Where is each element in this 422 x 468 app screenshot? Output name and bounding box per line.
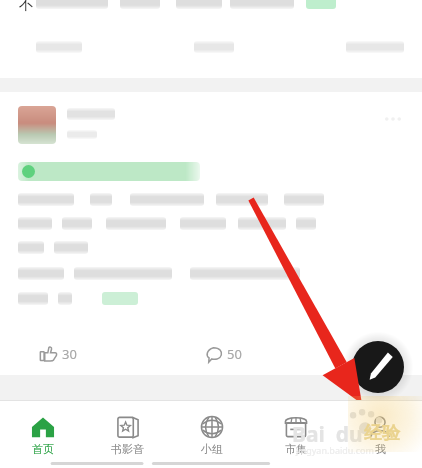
other: 市集 <box>284 415 308 439</box>
staticText: 首页 <box>32 442 54 456</box>
other: 赞 <box>40 346 57 363</box>
button[interactable] <box>0 0 422 78</box>
button[interactable]: 书影音 <box>85 409 170 460</box>
button[interactable]: 我 <box>338 409 422 460</box>
other: 首页 <box>31 415 55 439</box>
button[interactable]: 小组 <box>170 409 254 460</box>
button[interactable]: 转发 <box>364 341 398 367</box>
staticText: 50 <box>227 345 242 363</box>
staticText: 30 <box>62 345 77 363</box>
button[interactable]: 发布 <box>352 341 404 393</box>
button[interactable] <box>18 162 200 181</box>
other: 书影音 <box>116 415 140 439</box>
button[interactable]: 更多 <box>0 92 422 375</box>
other: 小组 <box>200 415 224 439</box>
staticText: 经验 <box>364 422 400 445</box>
button[interactable]: 首页 <box>0 409 85 460</box>
button[interactable]: 赞 <box>34 341 83 367</box>
staticText: 我 <box>375 442 386 456</box>
staticText: jingyan.baidu.com <box>296 444 374 456</box>
other: 评论 <box>205 346 222 363</box>
staticText: 市集 <box>285 442 307 456</box>
staticText: Bai du <box>292 420 363 449</box>
button[interactable]: 市集 <box>254 409 338 460</box>
staticText: 不 <box>19 0 34 15</box>
other: 转发 <box>370 346 387 363</box>
button[interactable]: 评论 <box>199 341 248 367</box>
staticText: 小组 <box>201 442 223 456</box>
staticText: 书影音 <box>111 442 144 456</box>
other: 我 <box>368 415 392 439</box>
